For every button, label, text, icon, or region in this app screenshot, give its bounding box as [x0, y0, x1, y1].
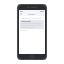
button[interactable]: More options	[42, 13, 44, 15]
button[interactable]: Content block	[20, 20, 44, 29]
button[interactable]: Menu	[20, 13, 22, 15]
button[interactable]: Menu	[19, 12, 45, 16]
button[interactable]: Phone device mockup	[18, 5, 46, 59]
